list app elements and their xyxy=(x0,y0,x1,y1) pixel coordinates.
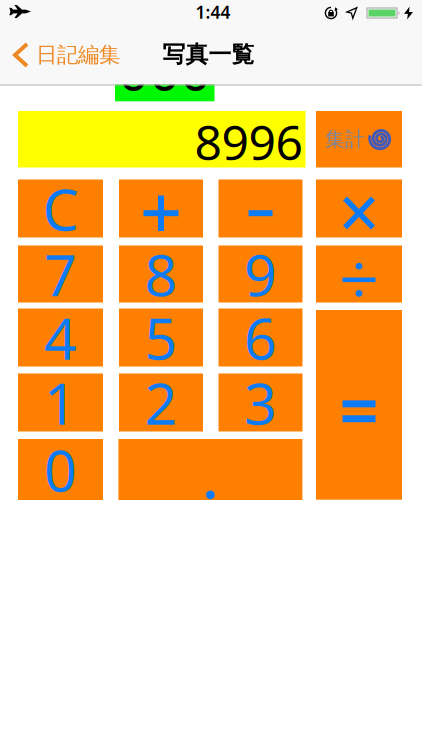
staticText: 集計 xyxy=(325,127,365,152)
staticText: 日記編集 xyxy=(36,42,120,68)
staticText: 1:44 xyxy=(195,0,230,23)
staticText: 8996 xyxy=(195,110,303,174)
button[interactable]: 4 xyxy=(18,308,103,366)
button[interactable]: 9 xyxy=(218,245,302,302)
button[interactable]: 1 xyxy=(18,373,103,431)
button[interactable]: Minus xyxy=(218,179,302,237)
button[interactable]: 集計 xyxy=(316,111,402,167)
button[interactable]: 8 xyxy=(119,245,203,302)
button[interactable]: 6 xyxy=(218,308,302,366)
button[interactable]: 2 xyxy=(119,373,203,431)
button[interactable]: 0 xyxy=(18,439,103,500)
button[interactable]: 3 xyxy=(218,373,302,431)
staticText: 写真一覧 xyxy=(162,41,254,68)
button[interactable]: 5 xyxy=(119,308,203,366)
button[interactable]: 7 xyxy=(18,245,103,302)
staticText: 5 xyxy=(144,299,177,375)
button[interactable]: Multiply xyxy=(316,179,402,237)
staticText: 0 xyxy=(44,431,77,507)
staticText: 000 xyxy=(118,34,211,105)
button[interactable]: Decimal point xyxy=(118,439,302,500)
staticText: 2 xyxy=(144,364,177,440)
staticText: 7 xyxy=(44,236,77,312)
staticText: 4 xyxy=(44,299,77,375)
button[interactable]: Plus xyxy=(119,179,203,237)
button[interactable]: 日記編集 xyxy=(12,42,120,68)
staticText: 8 xyxy=(144,236,177,312)
button[interactable]: C xyxy=(18,179,103,237)
staticText: 3 xyxy=(244,364,277,440)
staticText: C xyxy=(42,170,78,246)
button[interactable]: 000 xyxy=(115,43,214,101)
staticText: 9 xyxy=(244,236,277,312)
staticText: 1 xyxy=(44,364,77,440)
staticText: 6 xyxy=(244,299,277,375)
button[interactable]: Equals xyxy=(316,310,402,500)
button[interactable]: Divide xyxy=(316,245,402,302)
